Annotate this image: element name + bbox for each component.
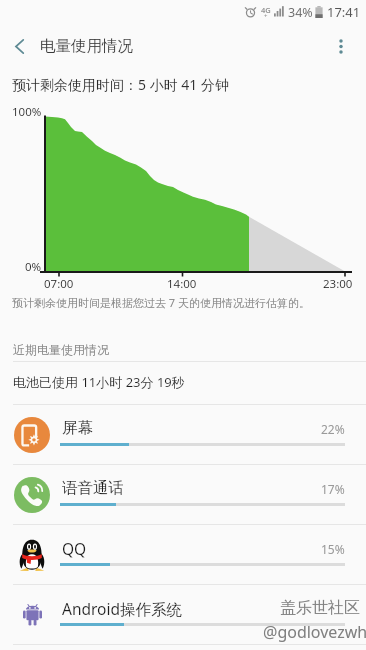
button[interactable]: QQ bbox=[0, 525, 366, 585]
staticText: 电池已使用 11小时 23分 19秒 bbox=[13, 373, 185, 391]
staticText: 预计剩余使用时间是根据您过去 7 天的使用情况进行估算的。 bbox=[12, 295, 311, 310]
staticText: 17:41 bbox=[327, 3, 361, 21]
button[interactable]: 屏幕 bbox=[0, 405, 366, 465]
staticText: 17% bbox=[321, 481, 345, 497]
button[interactable]: More options bbox=[322, 27, 360, 65]
staticText: 近期电量使用情况 bbox=[13, 342, 109, 357]
staticText: 15% bbox=[321, 541, 345, 557]
staticText: 0% bbox=[25, 259, 42, 275]
staticText: @godlovezwh bbox=[263, 621, 366, 643]
button[interactable]: 语音通话 bbox=[0, 465, 366, 525]
staticText: 34% bbox=[288, 4, 313, 21]
staticText: 盖乐世社区 bbox=[280, 598, 360, 618]
button[interactable]: Android操作系统 bbox=[0, 585, 366, 645]
staticText: 预计剩余使用时间：5 小时 41 分钟 bbox=[12, 75, 229, 94]
staticText: 电量使用情况 bbox=[40, 36, 133, 56]
staticText: 07:00 bbox=[44, 276, 74, 292]
staticText: Android操作系统 bbox=[62, 598, 183, 619]
staticText: 4G bbox=[261, 5, 271, 15]
staticText: 100% bbox=[12, 104, 42, 120]
staticText: 22% bbox=[321, 421, 345, 437]
staticText: + bbox=[264, 12, 268, 20]
button[interactable]: Back bbox=[0, 27, 38, 65]
staticText: QQ bbox=[62, 538, 87, 559]
staticText: 14:00 bbox=[167, 276, 197, 292]
staticText: 屏幕 bbox=[62, 418, 93, 438]
staticText: 语音通话 bbox=[62, 478, 124, 498]
staticText: 23:00 bbox=[323, 276, 353, 292]
